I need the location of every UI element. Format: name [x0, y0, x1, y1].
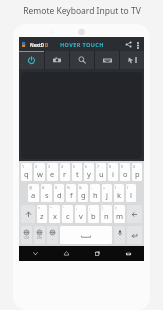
- button[interactable]: &: [78, 184, 88, 202]
- staticText: p: [135, 169, 140, 179]
- staticText: %: [67, 185, 70, 190]
- staticText: e: [50, 169, 55, 179]
- staticText: ': [63, 206, 64, 211]
- button[interactable]: !: [101, 205, 112, 223]
- staticText: n: [104, 211, 109, 221]
- button[interactable]: 0: [132, 163, 142, 181]
- staticText: w: [37, 169, 43, 179]
- staticText: 9: [121, 164, 124, 169]
- button[interactable]: (: [114, 184, 124, 202]
- button[interactable]: ": [49, 205, 60, 223]
- button[interactable]: Power: [19, 51, 44, 69]
- button[interactable]: 12#: [21, 226, 32, 244]
- button[interactable]: Shift: [21, 205, 35, 223]
- staticText: ;: [89, 206, 90, 211]
- staticText: 7: [97, 164, 100, 169]
- staticText: g: [81, 190, 86, 200]
- staticText: !: [102, 206, 103, 211]
- staticText: D: [45, 42, 49, 48]
- button[interactable]: 7: [96, 163, 106, 181]
- staticText: 5: [73, 164, 76, 169]
- button[interactable]: *: [37, 205, 47, 223]
- staticText: ?: [115, 206, 117, 211]
- button[interactable]: Backspace: [127, 205, 142, 223]
- button[interactable]: ': [62, 205, 73, 223]
- staticText: &: [79, 185, 82, 190]
- button[interactable]: 8: [108, 163, 118, 181]
- button[interactable]: 9: [120, 163, 130, 181]
- staticText: 6: [85, 164, 88, 169]
- staticText: l: [130, 190, 132, 200]
- button[interactable]: 1: [21, 163, 32, 181]
- staticText: k: [117, 190, 122, 200]
- staticText: a: [31, 190, 36, 200]
- staticText: Remote Keyboard Input to TV: [23, 5, 141, 17]
- button[interactable]: %: [66, 184, 76, 202]
- button[interactable]: NextD: [22, 41, 49, 48]
- staticText: -: [91, 185, 93, 190]
- other: Mouse settings: [127, 56, 135, 64]
- staticText: ": [50, 206, 52, 211]
- button[interactable]: Recents: [82, 246, 113, 261]
- staticText: .: [120, 236, 121, 241]
- staticText: 1: [22, 164, 25, 169]
- button[interactable]: #: [41, 184, 52, 202]
- staticText: 12#: [23, 235, 30, 240]
- staticText: 4: [61, 164, 64, 169]
- button[interactable]: Space: [60, 226, 112, 244]
- button[interactable]: Enter: [127, 226, 142, 244]
- staticText: #: [42, 185, 45, 190]
- button[interactable]: ): [126, 184, 136, 202]
- button[interactable]: 2: [34, 163, 45, 181]
- staticText: m: [116, 211, 124, 221]
- button[interactable]: Camera: [45, 51, 69, 69]
- button[interactable]: Mouse settings: [120, 51, 144, 69]
- staticText: u: [99, 169, 104, 179]
- staticText: ,: [52, 235, 53, 240]
- button[interactable]: 5: [72, 163, 82, 181]
- staticText: y: [87, 169, 91, 179]
- button[interactable]: ,: [47, 226, 58, 244]
- staticText: q: [24, 169, 29, 179]
- staticText: 2: [35, 164, 38, 169]
- button[interactable]: +: [102, 184, 112, 202]
- staticText: z: [40, 211, 44, 221]
- staticText: x: [53, 211, 57, 221]
- staticText: ): [127, 185, 129, 190]
- button[interactable]: 4: [60, 163, 70, 181]
- staticText: :: [76, 206, 77, 211]
- staticText: s: [45, 190, 49, 200]
- staticText: j: [106, 190, 108, 200]
- button[interactable]: Keyboard: [95, 51, 119, 69]
- staticText: t: [76, 169, 79, 179]
- staticText: 0: [133, 164, 136, 169]
- staticText: o: [123, 169, 128, 179]
- staticText: h: [93, 190, 98, 200]
- button[interactable]: Back: [19, 246, 51, 261]
- staticText: v: [79, 211, 83, 221]
- button[interactable]: $: [54, 184, 64, 202]
- button[interactable]: ;: [88, 205, 99, 223]
- button[interactable]: @: [28, 184, 39, 202]
- button[interactable]: ?: [114, 205, 125, 223]
- button[interactable]: 3: [47, 163, 58, 181]
- button[interactable]: Keyboard: [113, 246, 144, 261]
- button[interactable]: EN: [34, 226, 45, 244]
- staticText: 8: [109, 164, 112, 169]
- button[interactable]: 6: [84, 163, 94, 181]
- button[interactable]: Home: [51, 246, 82, 261]
- staticText: @: [29, 185, 33, 190]
- button[interactable]: More options: [134, 41, 142, 49]
- staticText: +: [103, 185, 106, 190]
- staticText: i: [112, 169, 114, 179]
- staticText: $: [55, 185, 58, 190]
- button[interactable]: :: [75, 205, 86, 223]
- button[interactable]: Voice input: [114, 226, 125, 244]
- button[interactable]: -: [90, 184, 100, 202]
- staticText: r: [63, 169, 67, 179]
- staticText: 3: [48, 164, 51, 169]
- button[interactable]: Search: [70, 51, 94, 69]
- button[interactable]: Share: [123, 39, 134, 50]
- staticText: *: [38, 206, 40, 211]
